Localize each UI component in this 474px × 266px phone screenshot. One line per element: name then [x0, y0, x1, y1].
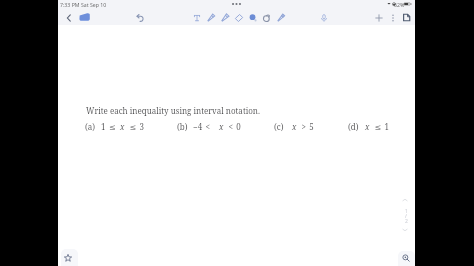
button[interactable]: Shapes [261, 12, 272, 23]
staticText: ≤ 3 [126, 121, 144, 132]
staticText: 62% [394, 1, 405, 8]
button[interactable]: Zoom [398, 251, 415, 266]
staticText: x [365, 121, 370, 132]
button[interactable]: Pen [205, 12, 216, 23]
staticText: −4 < [193, 121, 214, 132]
button[interactable]: Selection [247, 12, 258, 23]
button[interactable]: Undo [134, 12, 145, 23]
button[interactable]: More options [387, 12, 398, 23]
button[interactable]: Eraser [233, 12, 244, 23]
staticText: x [292, 121, 297, 132]
button[interactable]: Documents [79, 13, 90, 21]
staticText: Write each inequality using interval not… [86, 105, 261, 116]
button[interactable]: Page view [401, 12, 412, 23]
button[interactable]: Highlighter [219, 12, 230, 23]
staticText: (b) [177, 121, 188, 132]
button[interactable]: Laser pointer [275, 12, 286, 23]
staticText: Sat Sep 10 [81, 1, 107, 8]
staticText: 1 ≤ [101, 121, 119, 132]
button[interactable]: Add page [373, 12, 384, 23]
staticText: / [405, 213, 407, 220]
button[interactable]: Bookmark [61, 249, 78, 266]
staticText: ≤ 1 [371, 121, 389, 132]
staticText: 2 [405, 218, 408, 225]
staticText: (d) [348, 121, 359, 132]
staticText: (c) [274, 121, 284, 132]
staticText: (a) [85, 121, 96, 132]
staticText: > 5 [298, 121, 314, 132]
staticText: 7:33 PM [60, 1, 80, 8]
button[interactable]: Text tool [191, 12, 202, 23]
button[interactable]: Microphone [318, 12, 329, 23]
staticText: < 0 [225, 121, 241, 132]
staticText: x [219, 121, 224, 132]
staticText: 1 [405, 208, 408, 215]
staticText: x [120, 121, 125, 132]
button[interactable]: Back [63, 12, 74, 23]
